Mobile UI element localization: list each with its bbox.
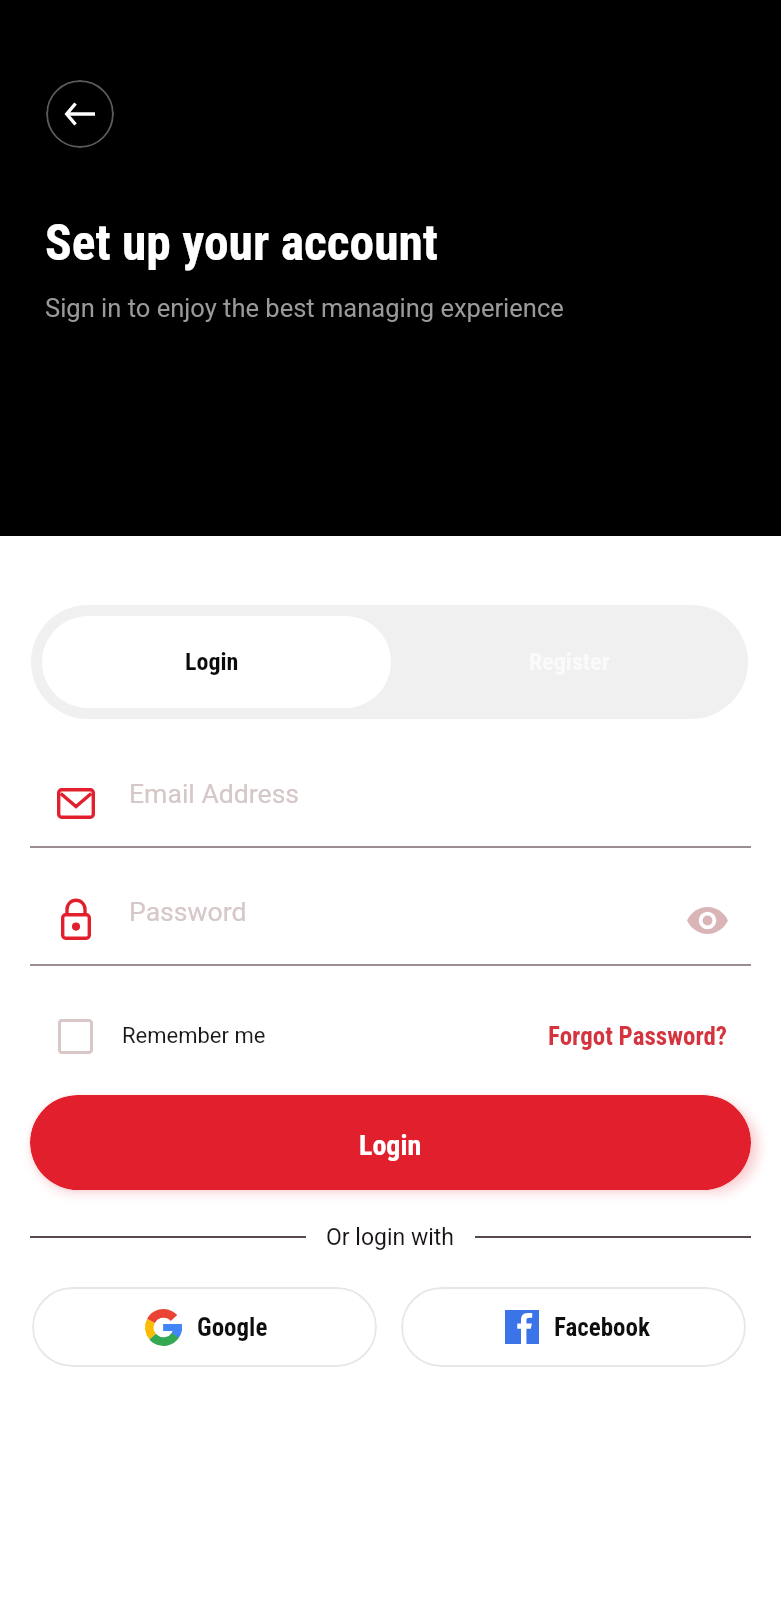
- button[interactable]: Show password: [679, 892, 735, 948]
- staticText: Or login with: [326, 1224, 455, 1251]
- button[interactable]: Remember me: [58, 1005, 237, 1067]
- staticText: Set up your account: [45, 214, 439, 272]
- staticText: Google: [197, 1313, 268, 1342]
- button[interactable]: Login: [30, 1095, 751, 1190]
- staticText: Forgot Password?: [548, 1022, 728, 1051]
- staticText: Password: [129, 896, 247, 927]
- button[interactable]: Password: [30, 892, 751, 964]
- button[interactable]: Forgot Password?: [548, 1022, 728, 1051]
- button[interactable]: Back: [46, 80, 114, 148]
- staticText: Login: [359, 1129, 422, 1162]
- button[interactable]: Login: [42, 616, 391, 708]
- button[interactable]: Google: [32, 1287, 377, 1367]
- staticText: Register: [529, 648, 610, 676]
- button[interactable]: Facebook: [401, 1287, 746, 1367]
- staticText: Login: [185, 648, 239, 676]
- staticText: Sign in to enjoy the best managing exper…: [45, 293, 564, 323]
- staticText: Remember me: [122, 1023, 266, 1049]
- staticText: Email Address: [129, 778, 300, 809]
- staticText: Facebook: [554, 1313, 650, 1342]
- button[interactable]: Email Address: [30, 780, 751, 846]
